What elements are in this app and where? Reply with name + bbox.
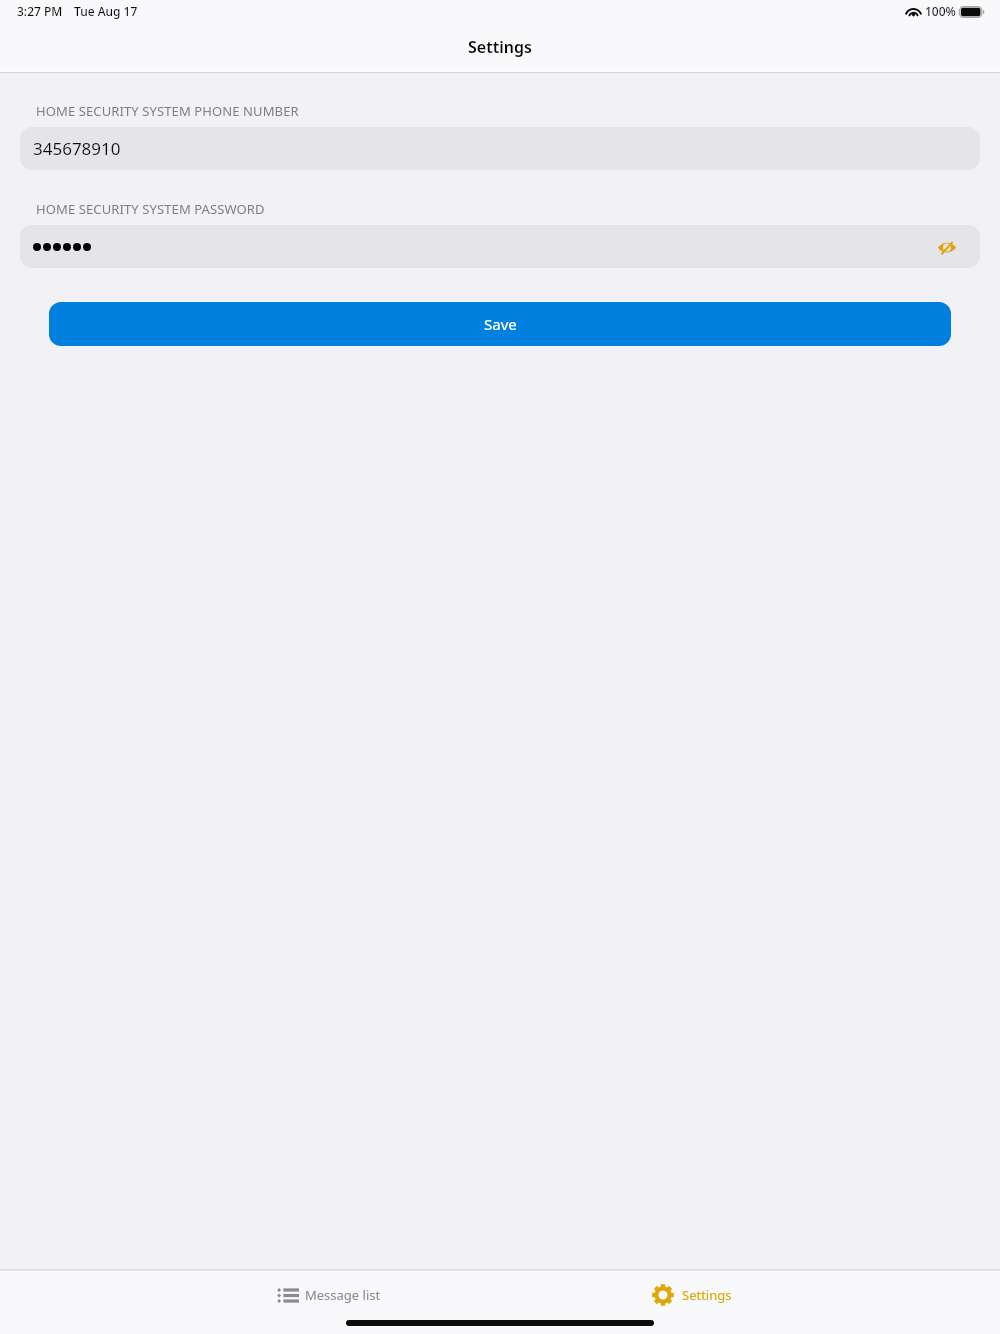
staticText: 100% [925,3,956,19]
staticText: 345678910 [33,137,121,160]
staticText: Save [484,314,517,334]
button[interactable]: Show password [932,232,962,262]
button[interactable]: Settings [500,1269,1000,1321]
staticText: Settings [682,1286,732,1304]
staticText: HOME SECURITY SYSTEM PHONE NUMBER [36,102,299,120]
staticText: Message list [305,1286,381,1304]
button[interactable]: Message list [0,1269,500,1321]
staticText: 3:27 PM [17,3,63,19]
button[interactable]: Save [49,302,951,346]
button[interactable]: 345678910 [20,127,980,170]
button[interactable]: Show password [20,225,980,268]
staticText: Settings [468,36,532,58]
staticText: Tue Aug 17 [74,3,138,19]
staticText: HOME SECURITY SYSTEM PASSWORD [36,200,265,218]
